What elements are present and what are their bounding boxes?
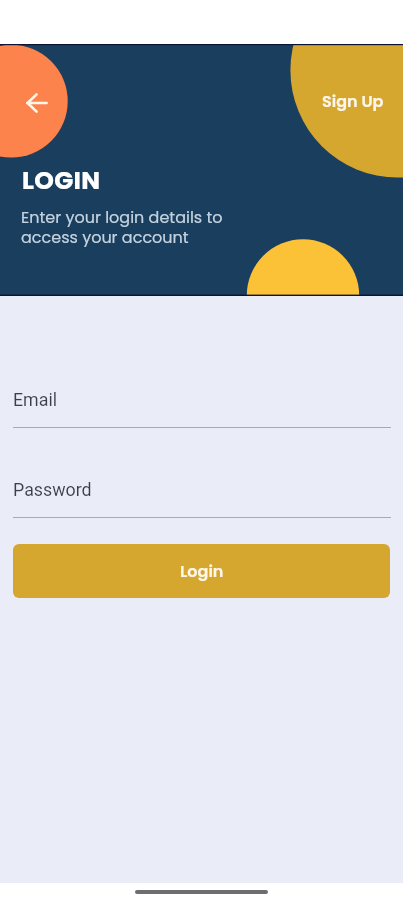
staticText: Login xyxy=(180,560,224,582)
button[interactable]: Sign Up xyxy=(314,84,392,118)
button[interactable]: Email xyxy=(13,379,391,429)
staticText: Email xyxy=(13,389,58,410)
button[interactable]: Login xyxy=(13,544,390,598)
staticText: Sign Up xyxy=(322,90,384,112)
button[interactable]: Back xyxy=(0,45,67,156)
staticText: Password xyxy=(13,479,92,500)
staticText: LOGIN xyxy=(22,163,101,198)
staticText: Enter your login details to access your … xyxy=(21,206,223,248)
button[interactable]: Password xyxy=(13,469,391,519)
